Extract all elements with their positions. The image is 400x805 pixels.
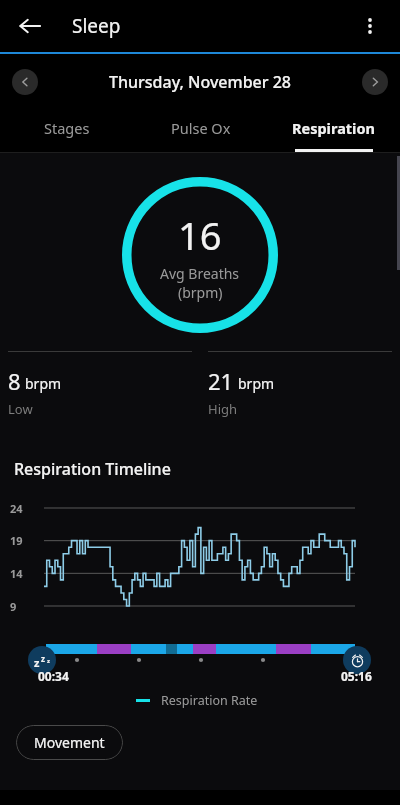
staticText: z [47, 657, 50, 665]
button[interactable]: Previous day [12, 69, 38, 95]
button[interactable]: Pulse Ox [134, 109, 267, 152]
button[interactable]: Bedtime [28, 646, 56, 674]
staticText: brpm [238, 374, 275, 393]
staticText: z [34, 655, 40, 670]
button[interactable]: More options [348, 4, 392, 48]
staticText: 24 [10, 501, 23, 516]
staticText: 16 [178, 209, 222, 261]
staticText: Low [8, 400, 33, 418]
button[interactable]: Wake time [343, 646, 371, 674]
staticText: brpm [25, 374, 62, 393]
button[interactable]: Back [8, 4, 52, 48]
staticText: 21 [208, 366, 234, 396]
button[interactable]: 21 [208, 351, 392, 418]
staticText: Respiration Rate [161, 692, 258, 709]
button[interactable]: 8 [8, 351, 192, 418]
button[interactable]: Next day [362, 69, 388, 95]
staticText: Respiration Timeline [14, 458, 171, 480]
staticText: 19 [10, 533, 23, 548]
button[interactable]: Respiration [267, 109, 400, 152]
staticText: Respiration [292, 118, 375, 138]
staticText: Avg Breaths [160, 264, 240, 283]
staticText: 05:16 [341, 668, 372, 684]
staticText: Sleep [72, 13, 121, 39]
staticText: Pulse Ox [171, 118, 231, 138]
staticText: 9 [10, 599, 17, 614]
staticText: z [41, 653, 45, 664]
staticText: 14 [10, 566, 23, 581]
staticText: 8 [8, 366, 21, 396]
staticText: High [208, 400, 238, 418]
staticText: Movement [34, 733, 105, 752]
button[interactable]: Stages [0, 109, 134, 152]
staticText: 00:34 [38, 668, 69, 684]
staticText: Thursday, November 28 [109, 71, 291, 93]
button[interactable]: Movement [16, 725, 123, 760]
staticText: (brpm) [178, 283, 223, 302]
staticText: Stages [44, 118, 90, 138]
